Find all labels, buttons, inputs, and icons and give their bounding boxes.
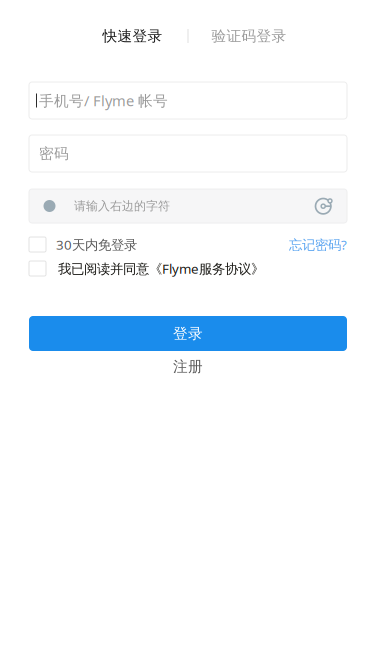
button[interactable]: 换一张验证码 [311, 193, 337, 219]
staticText: 密码 [39, 144, 69, 162]
button[interactable]: 注册 [29, 359, 347, 374]
staticText: 注册 [173, 357, 203, 375]
button[interactable]: 验证码登录 [188, 27, 323, 45]
staticText: 验证码登录 [211, 27, 286, 45]
button[interactable]: 登录 [29, 316, 347, 351]
button[interactable]: 快速登录 [52, 27, 187, 45]
staticText: 登录 [173, 324, 203, 342]
button[interactable]: 同意服务协议 [29, 261, 46, 276]
button[interactable]: 忘记密码? [289, 237, 347, 252]
staticText: 请输入右边的字符 [74, 199, 170, 213]
staticText: 30天内免登录 [56, 236, 137, 253]
staticText: 手机号/ Flyme 帐号 [39, 91, 168, 110]
button[interactable]: 30天内免登录 [29, 237, 137, 252]
staticText: 忘记密码? [289, 236, 347, 253]
staticText: 快速登录 [102, 27, 162, 45]
staticText: 我已阅读并同意《Flyme服务协议》 [58, 260, 264, 277]
